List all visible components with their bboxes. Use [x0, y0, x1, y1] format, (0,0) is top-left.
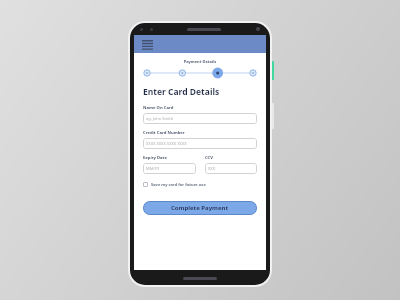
staticText: Save my card for future use: [151, 182, 206, 187]
staticText: XXX: [208, 166, 216, 171]
staticText: Name On Card: [143, 105, 174, 111]
staticText: eg. John Smith: [146, 116, 174, 121]
button[interactable]: Save my card for future use: [143, 181, 206, 188]
staticText: MM/YY: [146, 166, 160, 171]
staticText: XXXX XXXX XXXX XXXX: [146, 141, 187, 146]
button[interactable]: Open navigation menu: [140, 38, 154, 50]
button[interactable]: Complete Payment: [143, 201, 257, 215]
button[interactable]: XXXX XXXX XXXX XXXX: [143, 138, 257, 149]
button[interactable]: XXX: [205, 163, 257, 174]
staticText: Expiry Date: [143, 155, 167, 161]
staticText: Credit Card Number: [143, 130, 185, 136]
staticText: Enter Card Details: [143, 86, 220, 98]
button[interactable]: eg. John Smith: [143, 113, 257, 124]
staticText: CCV: [205, 155, 214, 161]
staticText: Payment Details: [143, 59, 257, 64]
button[interactable]: MM/YY: [143, 163, 196, 174]
staticText: Complete Payment: [171, 204, 229, 212]
